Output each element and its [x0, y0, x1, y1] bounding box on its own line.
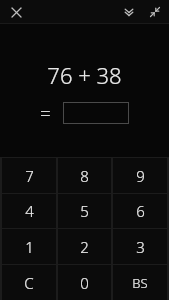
- button[interactable]: Collapse: [146, 3, 164, 21]
- staticText: 7: [25, 166, 34, 186]
- staticText: 1: [25, 237, 34, 257]
- button[interactable]: 5: [58, 194, 111, 228]
- staticText: 4: [25, 201, 34, 221]
- staticText: 6: [136, 201, 145, 221]
- staticText: 9: [136, 166, 145, 186]
- button[interactable]: 2: [58, 229, 111, 264]
- button[interactable]: Expand down: [120, 3, 138, 21]
- button[interactable]: 0: [58, 265, 111, 300]
- button[interactable]: Close: [7, 3, 25, 21]
- staticText: 0: [80, 273, 89, 293]
- staticText: 76 + 38: [47, 60, 122, 90]
- staticText: BS: [132, 274, 148, 292]
- staticText: =: [40, 100, 51, 126]
- staticText: C: [24, 273, 34, 293]
- button[interactable]: 3: [113, 229, 167, 264]
- button[interactable]: 7: [2, 158, 56, 193]
- button[interactable]: 9: [113, 158, 167, 193]
- staticText: 8: [80, 166, 89, 186]
- staticText: 5: [80, 201, 89, 221]
- button[interactable]: 6: [113, 194, 167, 228]
- staticText: 2: [80, 237, 89, 257]
- button[interactable]: C: [2, 265, 56, 300]
- button[interactable]: 8: [58, 158, 111, 193]
- button[interactable]: 4: [2, 194, 56, 228]
- button[interactable]: BS: [113, 265, 167, 300]
- button[interactable]: Answer input: [63, 102, 129, 124]
- staticText: 3: [136, 237, 145, 257]
- button[interactable]: 1: [2, 229, 56, 264]
